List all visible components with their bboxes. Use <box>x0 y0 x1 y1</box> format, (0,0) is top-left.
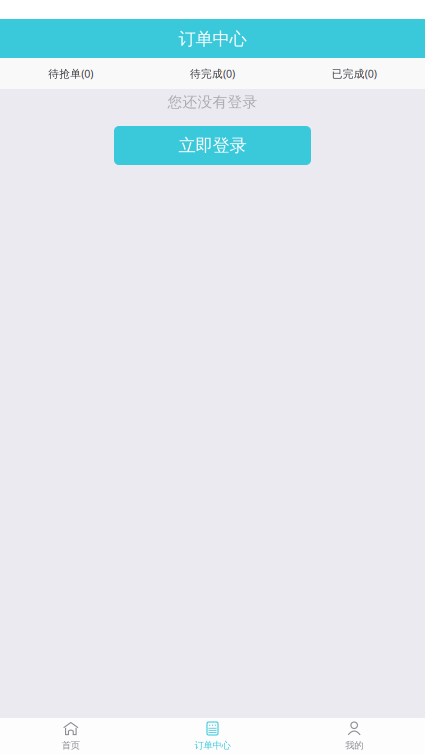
staticText: 立即登录 <box>178 135 246 156</box>
button[interactable]: 立即登录 <box>114 126 311 165</box>
button[interactable]: 订单中心 <box>142 718 283 755</box>
button[interactable]: 待抢单(0) <box>0 58 142 89</box>
staticText: 订单中心 <box>194 739 230 751</box>
button[interactable]: 我的 <box>283 718 425 755</box>
staticText: 订单中心 <box>178 28 246 50</box>
staticText: 待完成(0) <box>190 66 235 81</box>
button[interactable]: 已完成(0) <box>283 58 425 89</box>
staticText: 首页 <box>62 739 80 751</box>
staticText: 我的 <box>345 739 363 751</box>
staticText: 已完成(0) <box>332 66 377 81</box>
button[interactable]: 待完成(0) <box>142 58 283 89</box>
button[interactable]: 首页 <box>0 718 142 755</box>
staticText: 您还没有登录 <box>167 93 257 111</box>
staticText: 待抢单(0) <box>48 66 93 81</box>
